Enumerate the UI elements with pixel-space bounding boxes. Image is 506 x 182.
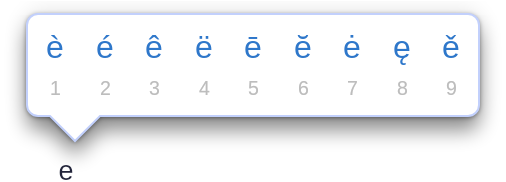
staticText: 7 [347, 77, 358, 99]
staticText: 8 [397, 77, 408, 99]
staticText: 2 [100, 77, 111, 99]
staticText: 4 [199, 77, 210, 99]
staticText: è [46, 29, 64, 65]
staticText: ë [195, 29, 213, 65]
staticText: ē [244, 29, 262, 65]
button[interactable]: e [41, 156, 91, 182]
button[interactable]: Insert ĕ [278, 14, 328, 116]
staticText: ė [343, 29, 361, 65]
staticText: 5 [248, 77, 259, 99]
staticText: 3 [149, 77, 160, 99]
staticText: 1 [50, 77, 61, 99]
button[interactable]: Insert è [30, 14, 80, 116]
button[interactable]: Insert ë [179, 14, 229, 116]
staticText: 9 [446, 77, 457, 99]
button[interactable]: Insert ē [228, 14, 278, 116]
staticText: e [58, 156, 74, 182]
button[interactable]: Insert ê [129, 14, 179, 116]
button[interactable]: Insert é [80, 14, 130, 116]
staticText: ě [442, 29, 460, 65]
staticText: ę [393, 29, 411, 65]
button[interactable]: Insert ė [327, 14, 377, 116]
staticText: ê [145, 29, 163, 65]
staticText: é [96, 29, 114, 65]
button[interactable]: Insert ę [377, 14, 427, 116]
button[interactable]: Insert ě [426, 14, 476, 116]
staticText: ĕ [294, 29, 312, 65]
staticText: 6 [298, 77, 309, 99]
